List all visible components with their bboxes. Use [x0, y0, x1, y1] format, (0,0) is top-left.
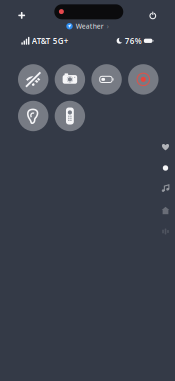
button[interactable]: Low Power Mode — [91, 64, 122, 95]
staticText: AT&T 5G+ — [32, 35, 69, 46]
button[interactable]: Now Playing — [157, 180, 174, 197]
button[interactable]: Main controls — [157, 159, 174, 176]
button[interactable]: Apple TV Remote — [55, 101, 85, 131]
button[interactable]: Hearing — [18, 101, 48, 131]
button[interactable]: Connectivity — [157, 223, 174, 240]
button[interactable]: Home controls — [157, 138, 174, 155]
staticText: Weather — [76, 22, 104, 31]
staticText: 76% — [125, 35, 142, 46]
button[interactable]: Screen Recording — [128, 64, 158, 95]
staticText: › — [107, 22, 109, 31]
button[interactable]: Home — [157, 202, 174, 219]
button[interactable]: Power off — [141, 3, 165, 27]
button[interactable]: Weather — [66, 20, 109, 33]
button[interactable]: Camera — [55, 64, 85, 95]
button[interactable]: Add control — [10, 3, 34, 27]
button[interactable]: Screen Mirroring off — [18, 64, 48, 95]
